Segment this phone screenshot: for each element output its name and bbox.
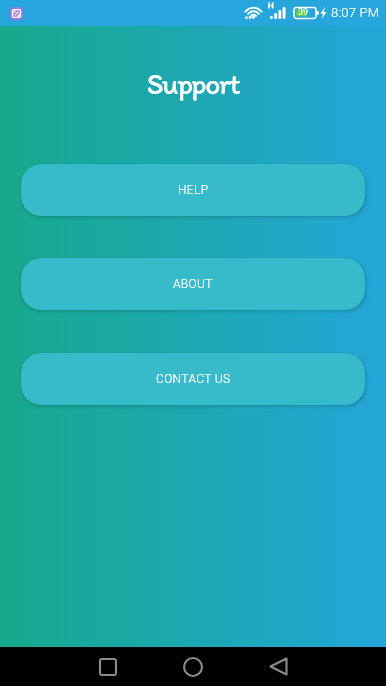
- staticText: 8:07 PM: [331, 5, 380, 20]
- button[interactable]: Home: [171, 647, 215, 686]
- button[interactable]: HELP: [21, 164, 365, 216]
- staticText: H: [268, 1, 274, 10]
- button[interactable]: Recents: [86, 647, 130, 686]
- staticText: ABOUT: [173, 277, 213, 291]
- staticText: Support: [0, 65, 386, 101]
- staticText: 39: [298, 7, 309, 18]
- button[interactable]: CONTACT US: [21, 353, 365, 405]
- button[interactable]: Back: [256, 647, 300, 686]
- staticText: CONTACT US: [156, 372, 231, 386]
- staticText: HELP: [178, 183, 209, 197]
- button[interactable]: ABOUT: [21, 258, 365, 310]
